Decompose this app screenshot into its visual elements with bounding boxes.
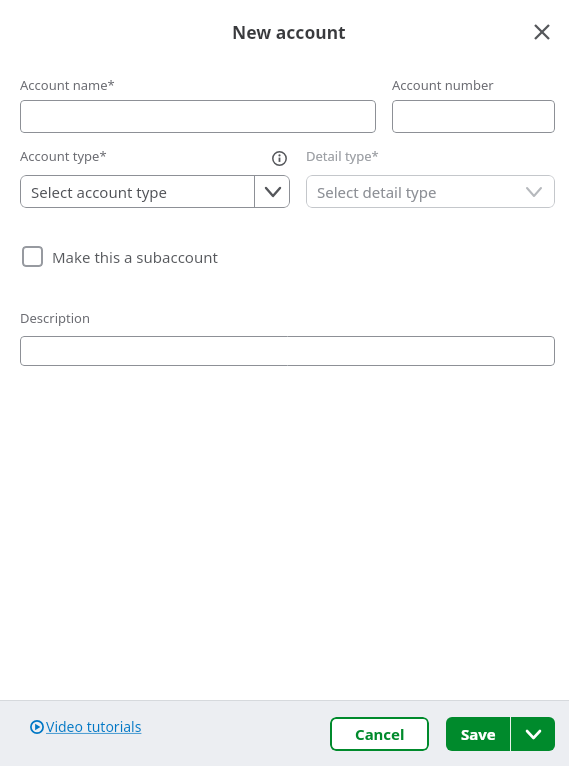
button[interactable] xyxy=(272,151,287,166)
staticText: Account name* xyxy=(20,76,115,94)
staticText: Video tutorials xyxy=(46,717,142,736)
button[interactable] xyxy=(528,18,556,46)
staticText: Save xyxy=(461,724,496,744)
button[interactable]: Save xyxy=(446,717,510,751)
staticText: New account xyxy=(232,20,346,44)
staticText: Account type* xyxy=(20,147,107,165)
staticText: Select detail type xyxy=(317,182,437,202)
staticText: Select account type xyxy=(31,182,168,202)
button[interactable]: Select account type xyxy=(20,175,290,208)
button[interactable]: Cancel xyxy=(330,717,429,751)
button[interactable] xyxy=(511,717,555,751)
button[interactable] xyxy=(20,336,555,366)
button[interactable]: Make this a subaccount xyxy=(20,246,218,267)
staticText: Account number xyxy=(392,76,494,94)
staticText: Cancel xyxy=(355,724,405,744)
staticText: Detail type* xyxy=(306,147,379,165)
button[interactable] xyxy=(392,100,555,133)
staticText: Description xyxy=(20,309,90,327)
button[interactable]: Video tutorials xyxy=(30,717,142,736)
staticText: Make this a subaccount xyxy=(52,247,218,267)
button[interactable] xyxy=(20,100,376,133)
